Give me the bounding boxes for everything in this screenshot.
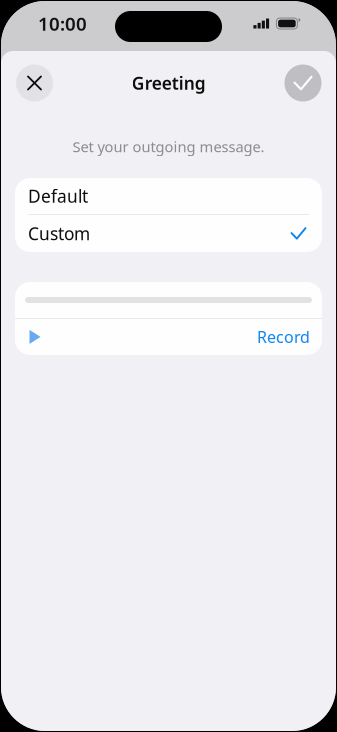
button[interactable]: Custom — [15, 215, 322, 252]
button[interactable]: Done — [284, 64, 321, 101]
staticText: Custom — [28, 222, 90, 245]
staticText: Set your outgoing message. — [72, 137, 264, 156]
button[interactable]: Close — [16, 64, 53, 101]
staticText: Record — [257, 326, 310, 347]
staticText: Default — [28, 184, 88, 207]
staticText: 10:00 — [38, 11, 87, 36]
staticText: Greeting — [132, 71, 206, 94]
button[interactable]: Record — [15, 319, 322, 355]
button[interactable]: Default — [15, 178, 322, 214]
